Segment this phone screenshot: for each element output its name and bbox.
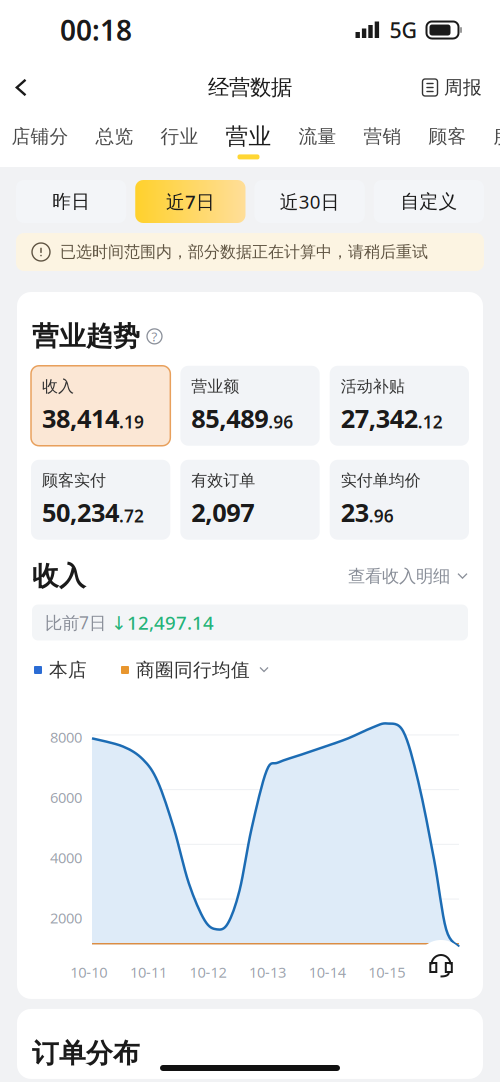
staticText: 比前7日 [45, 611, 111, 634]
staticText: 营业额 [191, 377, 239, 396]
staticText: 近30日 [280, 189, 340, 214]
staticText: 昨日 [52, 190, 90, 213]
staticText: 周报 [444, 76, 482, 99]
staticText: .96 [268, 410, 293, 433]
staticText: ↓12,497.14 [111, 610, 214, 635]
staticText: 5G [389, 16, 417, 44]
button[interactable]: 客服 [416, 940, 466, 990]
button[interactable]: 查看收入明细 [348, 565, 468, 587]
button[interactable]: 服务 [480, 115, 500, 167]
staticText: 27,342 [341, 401, 418, 435]
staticText: 订单分布 [32, 1037, 140, 1070]
button[interactable]: 自定义 [374, 180, 484, 223]
button[interactable]: 周报 [422, 64, 482, 110]
staticText: 流量 [298, 125, 336, 148]
staticText: 顾客 [428, 125, 466, 148]
staticText: .96 [369, 504, 394, 527]
staticText: 有效订单 [191, 471, 255, 490]
staticText: 行业 [160, 125, 198, 148]
staticText: 4000 [50, 848, 82, 867]
staticText: 收入 [42, 377, 74, 396]
staticText: 总览 [95, 125, 133, 148]
staticText: 服务 [493, 125, 500, 148]
staticText: 实付单均价 [341, 471, 421, 490]
button[interactable]: 近7日 [135, 180, 245, 223]
staticText: 10-13 [249, 962, 286, 982]
staticText: 自定义 [400, 190, 457, 213]
button[interactable]: 流量 [285, 115, 350, 167]
staticText: ? [151, 327, 157, 345]
staticText: .12 [418, 410, 443, 433]
staticText: 营业趋势 [32, 320, 140, 353]
staticText: 2,097 [191, 495, 254, 529]
button[interactable]: 收入 [31, 366, 170, 446]
staticText: 38,414 [42, 401, 119, 435]
button[interactable]: 顾客实付 [31, 460, 170, 540]
button[interactable]: 营业 [212, 115, 285, 167]
staticText: 10-14 [309, 962, 346, 982]
button[interactable]: 总览 [82, 115, 147, 167]
button[interactable]: 顾客 [415, 115, 480, 167]
staticText: .72 [119, 504, 144, 527]
staticText: 店铺分 [11, 125, 68, 148]
staticText: 经营数据 [208, 74, 292, 101]
staticText: 营销 [363, 125, 401, 148]
button[interactable]: 昨日 [16, 180, 126, 223]
staticText: 10-15 [368, 962, 405, 982]
staticText: 已选时间范围内，部分数据正在计算中，请稍后重试 [60, 242, 428, 262]
staticText: 商圈同行均值 [136, 658, 250, 681]
staticText: 顾客实付 [42, 471, 106, 490]
staticText: 2000 [50, 908, 82, 927]
button[interactable]: 营业额 [180, 366, 320, 446]
staticText: 活动补贴 [341, 377, 405, 396]
staticText: 10-12 [189, 962, 226, 982]
button[interactable]: 活动补贴 [330, 366, 469, 446]
button[interactable]: 实付单均价 [330, 460, 469, 540]
staticText: 50,234 [42, 495, 119, 529]
button[interactable]: 营销 [350, 115, 415, 167]
staticText: 00:18 [60, 11, 132, 49]
staticText: 近7日 [166, 189, 215, 214]
staticText: 6000 [50, 788, 82, 807]
button[interactable]: 近30日 [254, 180, 365, 223]
staticText: 23 [341, 495, 369, 529]
staticText: .19 [119, 410, 144, 433]
button[interactable]: 店铺分 [0, 115, 82, 167]
staticText: 10-11 [130, 962, 167, 982]
staticText: 收入 [32, 560, 86, 593]
button[interactable]: 返回 [2, 64, 40, 110]
button[interactable]: 行业 [147, 115, 212, 167]
staticText: 8000 [50, 727, 82, 747]
staticText: 85,489 [191, 401, 268, 435]
button[interactable]: 有效订单 [180, 460, 320, 540]
staticText: 10-10 [70, 962, 107, 982]
staticText: 营业 [225, 123, 271, 150]
staticText: 本店 [49, 658, 87, 681]
staticText: 查看收入明细 [348, 565, 450, 587]
